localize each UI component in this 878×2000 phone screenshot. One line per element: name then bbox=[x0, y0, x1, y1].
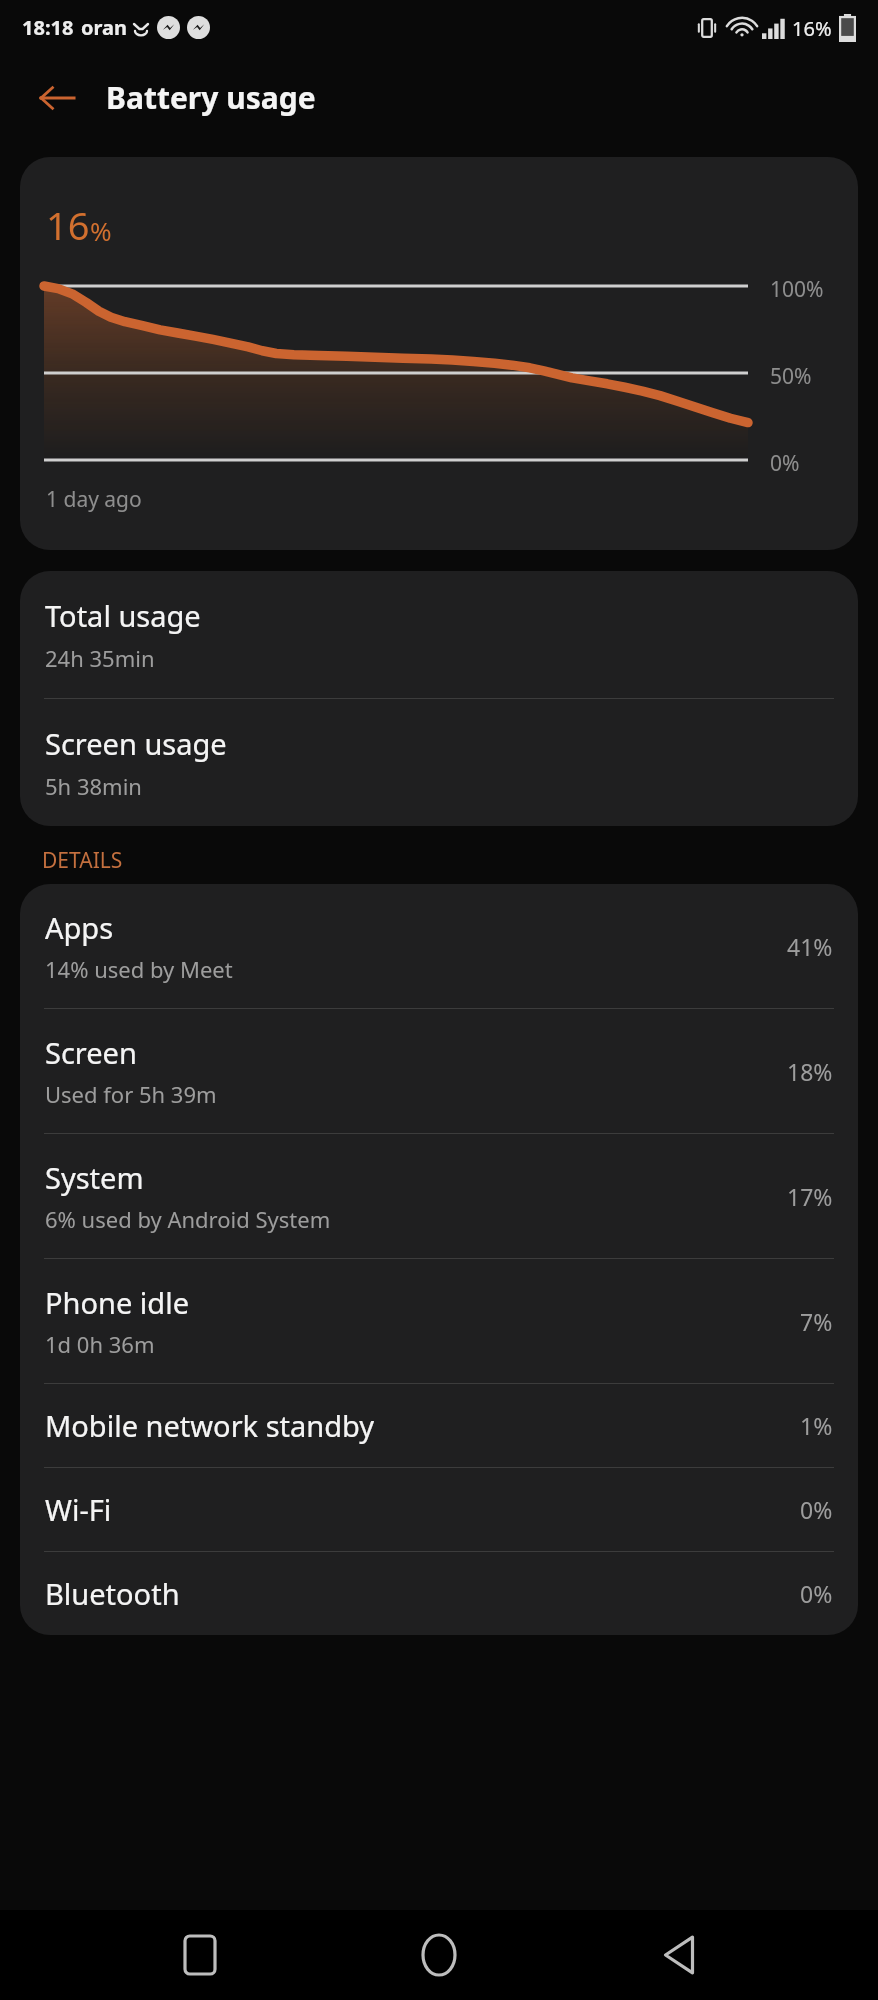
staticText: DETAILS bbox=[42, 846, 123, 875]
staticText: Bluetooth bbox=[45, 1574, 180, 1613]
staticText: Total usage bbox=[45, 596, 201, 635]
staticText: System bbox=[45, 1158, 144, 1197]
staticText: 24h 35min bbox=[45, 643, 155, 673]
button[interactable]: Mobile network standby bbox=[20, 1384, 858, 1467]
staticText: 5h 38min bbox=[45, 771, 142, 801]
staticText: Mobile network standby bbox=[45, 1406, 375, 1445]
staticText: oran bbox=[81, 14, 128, 41]
staticText: 16 bbox=[46, 199, 90, 251]
button[interactable]: Back bbox=[30, 71, 84, 125]
button[interactable]: Apps bbox=[20, 884, 858, 1008]
staticText: 0% bbox=[800, 1578, 833, 1609]
staticText: 16% bbox=[792, 15, 832, 42]
staticText: 1% bbox=[800, 1410, 833, 1441]
staticText: 1 day ago bbox=[46, 485, 142, 514]
button[interactable]: Phone idle bbox=[20, 1259, 858, 1383]
staticText: 41% bbox=[787, 931, 833, 962]
staticText: Apps bbox=[45, 908, 114, 947]
staticText: 100% bbox=[770, 275, 824, 297]
button[interactable]: Screen usage bbox=[20, 699, 858, 826]
button[interactable]: Bluetooth bbox=[20, 1552, 858, 1635]
button[interactable]: Home bbox=[399, 1915, 479, 1995]
staticText: 18:18 bbox=[22, 14, 74, 41]
button[interactable]: Recent apps bbox=[160, 1915, 240, 1995]
staticText: 0% bbox=[800, 1494, 833, 1525]
staticText: Phone idle bbox=[45, 1283, 189, 1322]
staticText: Wi-Fi bbox=[45, 1490, 112, 1529]
button[interactable]: Wi-Fi bbox=[20, 1468, 858, 1551]
staticText: 50% bbox=[770, 362, 812, 384]
staticText: 1d 0h 36m bbox=[45, 1329, 155, 1359]
button[interactable]: 16 bbox=[20, 157, 858, 550]
staticText: 6% used by Android System bbox=[45, 1204, 331, 1234]
staticText: 18% bbox=[787, 1056, 833, 1087]
button[interactable]: Total usage bbox=[20, 571, 858, 698]
staticText: 14% used by Meet bbox=[45, 954, 233, 984]
button[interactable]: Back bbox=[639, 1915, 719, 1995]
staticText: Used for 5h 39m bbox=[45, 1079, 217, 1109]
staticText: Screen usage bbox=[45, 724, 227, 763]
staticText: 17% bbox=[787, 1181, 833, 1212]
button[interactable]: System bbox=[20, 1134, 858, 1258]
staticText: % bbox=[90, 213, 112, 248]
button[interactable]: Screen bbox=[20, 1009, 858, 1133]
staticText: 7% bbox=[800, 1306, 833, 1337]
staticText: Battery usage bbox=[106, 77, 316, 118]
staticText: 0% bbox=[770, 449, 800, 471]
staticText: Screen bbox=[45, 1033, 137, 1072]
